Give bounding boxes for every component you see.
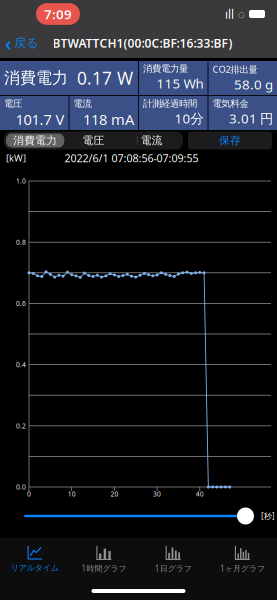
button[interactable]: 消費電力 bbox=[6, 133, 64, 147]
button[interactable]: 1ヶ月グラフ bbox=[208, 538, 277, 582]
staticText: BTWATTCH1(00:0C:BF:16:33:BF) bbox=[52, 35, 232, 51]
button[interactable]: リアルタイム bbox=[0, 538, 69, 582]
staticText: 1ヶ月グラフ bbox=[220, 563, 265, 574]
staticText: ‹ bbox=[5, 30, 12, 56]
staticText: 0.2 bbox=[16, 421, 26, 430]
staticText: [秒] bbox=[261, 511, 275, 521]
staticText: 電圧 bbox=[4, 98, 22, 109]
staticText: リアルタイム bbox=[11, 563, 59, 573]
staticText: 10 bbox=[68, 490, 76, 498]
staticText: 0.17 W bbox=[77, 66, 133, 89]
button[interactable]: 1日グラフ bbox=[138, 538, 208, 582]
button[interactable]: 電圧 bbox=[64, 133, 123, 147]
staticText: ıll bbox=[225, 6, 234, 22]
staticText: 0.4 bbox=[16, 360, 26, 369]
button[interactable]: 保存 bbox=[188, 131, 272, 149]
staticText: 消費電力 bbox=[13, 134, 57, 147]
staticText: 115 Wh bbox=[156, 74, 203, 92]
staticText: 10分 bbox=[174, 109, 203, 127]
staticText: 電圧 bbox=[82, 134, 104, 147]
staticText: 58.0 g bbox=[234, 75, 273, 93]
staticText: 3.01 円 bbox=[229, 109, 273, 127]
staticText: 101.7 V bbox=[15, 109, 64, 129]
staticText: 戻る bbox=[14, 36, 38, 50]
staticText: 保存 bbox=[219, 134, 241, 147]
button[interactable]: 1時間グラフ bbox=[69, 538, 138, 582]
staticText: ◌ bbox=[238, 6, 245, 22]
staticText: 0.0 bbox=[16, 483, 26, 491]
staticText: 20 bbox=[110, 490, 118, 498]
staticText: 1時間グラフ bbox=[81, 563, 126, 574]
staticText: 消費電力量 bbox=[143, 63, 188, 74]
staticText: CO2排出量 bbox=[212, 63, 257, 75]
staticText: 2022/6/1 07:08:56-07:09:55 bbox=[64, 151, 198, 165]
staticText: 40 bbox=[196, 490, 204, 498]
staticText: 計測経過時間 bbox=[143, 98, 197, 109]
staticText: 電流 bbox=[73, 98, 91, 109]
staticText: 1.0 bbox=[16, 177, 26, 185]
button[interactable]: ‹ bbox=[0, 30, 38, 56]
button[interactable]: 電流 bbox=[123, 133, 181, 147]
staticText: 0.8 bbox=[16, 238, 26, 247]
staticText: 0 bbox=[27, 490, 31, 498]
button[interactable]: Time window bbox=[0, 503, 260, 529]
staticText: [kW] bbox=[6, 152, 26, 164]
staticText: 118 mA bbox=[83, 109, 134, 129]
staticText: 電気料金 bbox=[212, 98, 248, 109]
staticText: 消費電力 bbox=[4, 68, 68, 88]
staticText: 電流 bbox=[141, 134, 163, 147]
staticText: 1日グラフ bbox=[155, 563, 192, 574]
staticText: 30 bbox=[153, 490, 161, 498]
staticText: 0.6 bbox=[16, 299, 26, 308]
staticText: 7:09 bbox=[44, 5, 72, 23]
